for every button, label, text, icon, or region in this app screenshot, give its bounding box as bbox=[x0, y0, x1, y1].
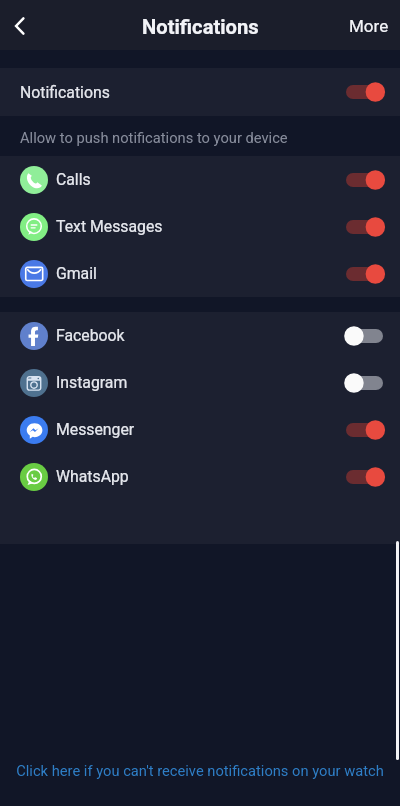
button[interactable] bbox=[344, 324, 383, 348]
button[interactable] bbox=[344, 418, 383, 442]
staticText: WhatsApp bbox=[56, 467, 129, 486]
staticText: Messenger bbox=[56, 420, 135, 439]
button[interactable]: Gmail bbox=[0, 250, 400, 297]
button[interactable]: Instagram bbox=[0, 359, 400, 406]
staticText: More bbox=[349, 16, 389, 36]
button[interactable]: Calls bbox=[0, 156, 400, 203]
staticText: Gmail bbox=[56, 264, 97, 283]
button[interactable]: Notifications bbox=[0, 68, 400, 116]
staticText: Notifications bbox=[142, 15, 259, 39]
staticText: Allow to push notifications to your devi… bbox=[20, 129, 288, 146]
button[interactable]: Text Messages bbox=[0, 203, 400, 250]
staticText: Text Messages bbox=[56, 217, 163, 236]
button[interactable] bbox=[344, 215, 383, 239]
button[interactable] bbox=[344, 262, 383, 286]
button[interactable]: Messenger bbox=[0, 406, 400, 453]
button[interactable] bbox=[344, 168, 383, 192]
button[interactable] bbox=[344, 465, 383, 489]
button[interactable] bbox=[344, 371, 383, 395]
button[interactable] bbox=[344, 80, 383, 104]
staticText: Facebook bbox=[56, 326, 125, 345]
staticText: Notifications bbox=[20, 83, 110, 102]
staticText: Instagram bbox=[56, 373, 128, 392]
button[interactable]: Back bbox=[0, 0, 44, 50]
button[interactable]: WhatsApp bbox=[0, 453, 400, 500]
button[interactable]: Facebook bbox=[0, 312, 400, 359]
staticText: Click here if you can't receive notifica… bbox=[0, 762, 400, 779]
staticText: Calls bbox=[56, 170, 91, 189]
button[interactable]: More bbox=[339, 7, 400, 43]
